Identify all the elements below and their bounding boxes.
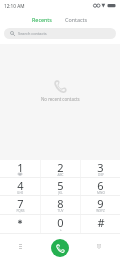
button[interactable]: Call bbox=[51, 239, 69, 257]
staticText: 8 bbox=[57, 196, 64, 211]
staticText: PQRS bbox=[16, 209, 25, 213]
staticText: 0 bbox=[57, 215, 64, 230]
staticText: Recents bbox=[32, 16, 52, 23]
staticText: 4 bbox=[17, 178, 24, 193]
button[interactable]: Contacts bbox=[59, 13, 94, 26]
staticText: DEF bbox=[98, 173, 104, 177]
staticText: # bbox=[97, 215, 105, 230]
staticText: WXYZ bbox=[96, 209, 105, 213]
button[interactable]: 4 bbox=[0, 178, 40, 196]
button[interactable]: Keypad bbox=[89, 236, 109, 256]
staticText: JKL bbox=[58, 191, 63, 195]
staticText: 3 bbox=[97, 160, 104, 175]
staticText: ✱ bbox=[17, 218, 23, 225]
button[interactable]: # bbox=[81, 215, 120, 234]
button[interactable]: Search contacts bbox=[4, 28, 116, 39]
button[interactable]: ✱ bbox=[0, 215, 40, 234]
button[interactable]: 9 bbox=[81, 196, 120, 215]
button[interactable]: 6 bbox=[81, 178, 120, 196]
button[interactable]: 3 bbox=[81, 160, 120, 178]
staticText: 7 bbox=[17, 196, 24, 211]
staticText: Contacts bbox=[65, 16, 88, 23]
staticText: Search contacts bbox=[18, 31, 47, 36]
staticText: 6 bbox=[97, 178, 104, 193]
staticText: 9 bbox=[97, 196, 104, 211]
staticText: 12:10 AM bbox=[4, 3, 25, 9]
button[interactable]: 5 bbox=[41, 178, 80, 196]
staticText: 1 bbox=[17, 160, 24, 175]
button[interactable]: 7 bbox=[0, 196, 40, 215]
button[interactable]: 2 bbox=[41, 160, 80, 178]
staticText: + bbox=[60, 228, 62, 232]
staticText: 5 bbox=[57, 178, 64, 193]
staticText: MNO bbox=[97, 191, 105, 195]
staticText: 2 bbox=[57, 160, 64, 175]
button[interactable]: 8 bbox=[41, 196, 80, 215]
button[interactable]: More options bbox=[10, 236, 30, 256]
staticText: TUV bbox=[57, 209, 64, 213]
button[interactable]: 0 bbox=[41, 215, 80, 234]
staticText: GHI bbox=[17, 191, 23, 195]
button[interactable]: Recents bbox=[26, 13, 58, 26]
button[interactable]: 1 bbox=[0, 160, 40, 178]
staticText: No recent contacts bbox=[41, 96, 80, 102]
staticText: ABC bbox=[57, 173, 64, 177]
